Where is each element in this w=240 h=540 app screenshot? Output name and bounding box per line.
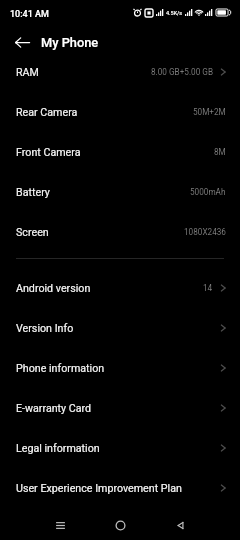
staticText: Screen <box>16 226 49 239</box>
staticText: RAM <box>16 66 39 79</box>
button[interactable]: Home <box>90 510 150 540</box>
staticText: My Phone <box>41 35 99 50</box>
staticText: Front Camera <box>16 146 81 159</box>
staticText: Android version <box>16 282 91 295</box>
button[interactable]: Recents <box>30 510 90 540</box>
button[interactable]: Back <box>7 28 37 56</box>
button[interactable]: Legal information <box>0 428 240 468</box>
staticText: 4.5K/s <box>166 10 183 16</box>
staticText: Version Info <box>16 322 74 335</box>
button[interactable]: RAM <box>0 52 240 92</box>
button[interactable]: Rear Camera <box>0 92 240 132</box>
staticText: Legal information <box>16 442 100 455</box>
staticText: 8M <box>214 147 226 157</box>
button[interactable]: Version Info <box>0 308 240 348</box>
button[interactable]: User Experience Improvement Plan <box>0 468 240 508</box>
staticText: 50M+2M <box>193 107 226 117</box>
staticText: 1080X2436 <box>184 227 226 237</box>
button[interactable]: E-warranty Card <box>0 388 240 428</box>
staticText: Phone information <box>16 362 105 375</box>
staticText: 14 <box>203 283 213 293</box>
button[interactable]: Phone information <box>0 348 240 388</box>
button[interactable]: Back <box>150 510 210 540</box>
staticText: 5000mAh <box>190 187 226 197</box>
staticText: E-warranty Card <box>16 402 92 415</box>
button[interactable]: Battery <box>0 172 240 212</box>
button[interactable]: Screen <box>0 212 240 252</box>
staticText: Battery <box>16 186 50 199</box>
button[interactable]: Front Camera <box>0 132 240 172</box>
staticText: 8.00 GB+5.00 GB <box>151 67 213 77</box>
staticText: 10:41 AM <box>10 9 49 20</box>
button[interactable]: Android version <box>0 268 240 308</box>
staticText: User Experience Improvement Plan <box>16 482 182 495</box>
staticText: Rear Camera <box>16 106 78 119</box>
